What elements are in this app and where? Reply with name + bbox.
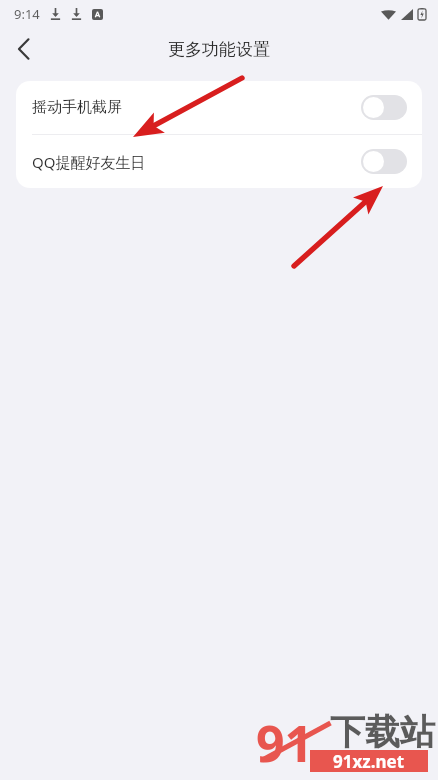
- button[interactable]: Toggle: [361, 149, 407, 174]
- staticText: 摇动手机截屏: [32, 98, 361, 117]
- staticText: 91: [256, 709, 314, 775]
- staticText: 91xz.net: [333, 750, 405, 772]
- staticText: 9:14: [14, 5, 40, 23]
- staticText: 下载站: [330, 710, 435, 754]
- button[interactable]: QQ提醒好友生日: [16, 135, 422, 188]
- button[interactable]: 摇动手机截屏: [16, 81, 422, 134]
- button[interactable]: Toggle: [361, 95, 407, 120]
- staticText: 更多功能设置: [168, 39, 270, 60]
- staticText: QQ提醒好友生日: [32, 152, 361, 172]
- button[interactable]: Back: [0, 28, 48, 70]
